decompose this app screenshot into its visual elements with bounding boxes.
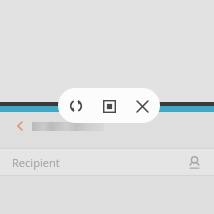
- button[interactable]: Close: [127, 91, 157, 121]
- staticText: Recipient: [12, 155, 60, 170]
- button[interactable]: Rotate: [61, 91, 91, 121]
- button[interactable]: Pick contact: [182, 150, 206, 174]
- button[interactable]: Back: [0, 112, 214, 140]
- button[interactable]: Recipient: [0, 149, 214, 175]
- button[interactable]: Resize: [94, 91, 124, 121]
